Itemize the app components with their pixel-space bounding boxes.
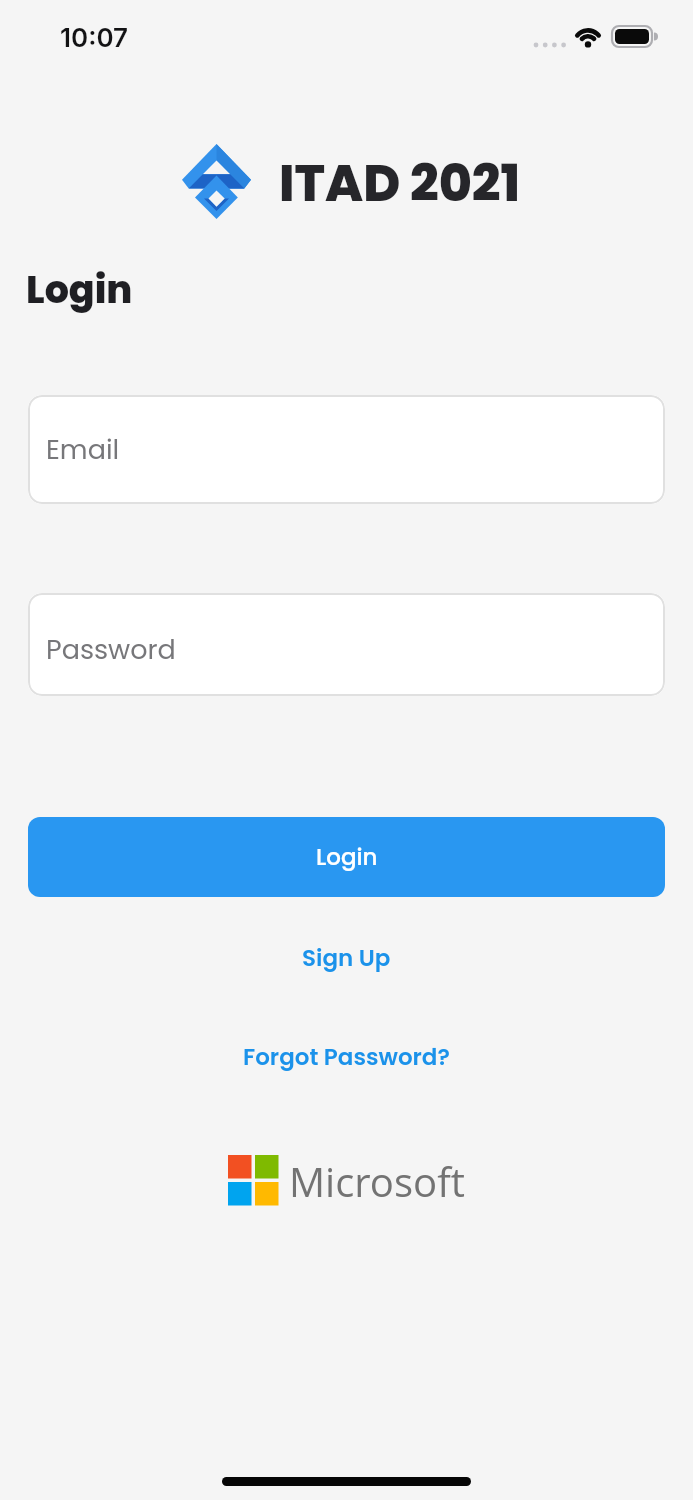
- staticText: Login: [316, 841, 378, 873]
- button[interactable]: Password: [28, 593, 665, 696]
- button[interactable]: Sign Up: [302, 942, 391, 974]
- staticText: Password: [46, 631, 176, 669]
- staticText: Forgot Password?: [243, 1041, 450, 1073]
- staticText: Microsoft: [289, 1154, 465, 1208]
- staticText: ITAD 2021: [279, 148, 521, 219]
- button[interactable]: Microsoft: [228, 1150, 468, 1212]
- button[interactable]: Login: [28, 817, 665, 897]
- staticText: 10:07: [60, 22, 129, 53]
- button[interactable]: Email: [28, 395, 665, 504]
- button[interactable]: Forgot Password?: [243, 1041, 450, 1073]
- staticText: Sign Up: [302, 942, 391, 974]
- staticText: Email: [46, 431, 120, 469]
- staticText: Login: [26, 263, 133, 316]
